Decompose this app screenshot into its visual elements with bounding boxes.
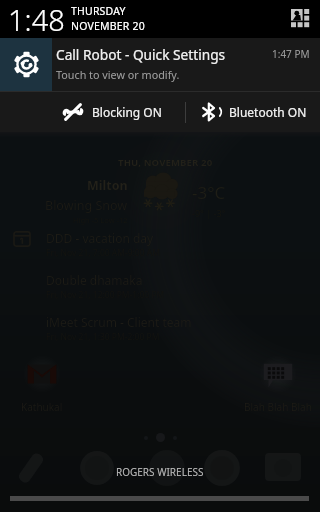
staticText: Blah Blah Blah bbox=[244, 400, 312, 414]
button[interactable]: Call Robot - Quick Settings bbox=[0, 38, 320, 91]
staticText: THURSDAY bbox=[71, 4, 126, 18]
button[interactable]: Quick settings bbox=[286, 4, 316, 34]
staticText: Bluetooth ON bbox=[229, 104, 307, 120]
button[interactable]: Kathukal bbox=[4, 355, 80, 414]
staticText: DDD - vacation day bbox=[46, 230, 154, 246]
staticText: Touch to view or modify. bbox=[56, 67, 180, 82]
staticText: NOVEMBER 20 bbox=[71, 19, 145, 33]
staticText: Call Robot - Quick Settings bbox=[56, 45, 226, 64]
staticText: ROGERS WIRELESS bbox=[116, 465, 204, 479]
staticText: 1:47 PM bbox=[272, 47, 310, 61]
staticText: iMeet Scrum - Client team bbox=[46, 314, 192, 330]
button[interactable]: Blah Blah Blah bbox=[240, 355, 316, 414]
staticText: Blocking ON bbox=[92, 104, 162, 120]
staticText: Kathukal bbox=[21, 400, 63, 414]
staticText: Blowing Snow bbox=[45, 197, 128, 214]
button[interactable]: Bluetooth ON bbox=[186, 92, 320, 132]
staticText: Milton bbox=[87, 177, 128, 194]
staticText: THU, NOVEMBER 20 bbox=[118, 156, 213, 169]
staticText: 1:48 bbox=[8, 0, 65, 36]
staticText: -3°C bbox=[192, 181, 226, 204]
button[interactable]: Blocking ON bbox=[0, 92, 185, 132]
staticText: Double dhamaka bbox=[46, 272, 143, 288]
